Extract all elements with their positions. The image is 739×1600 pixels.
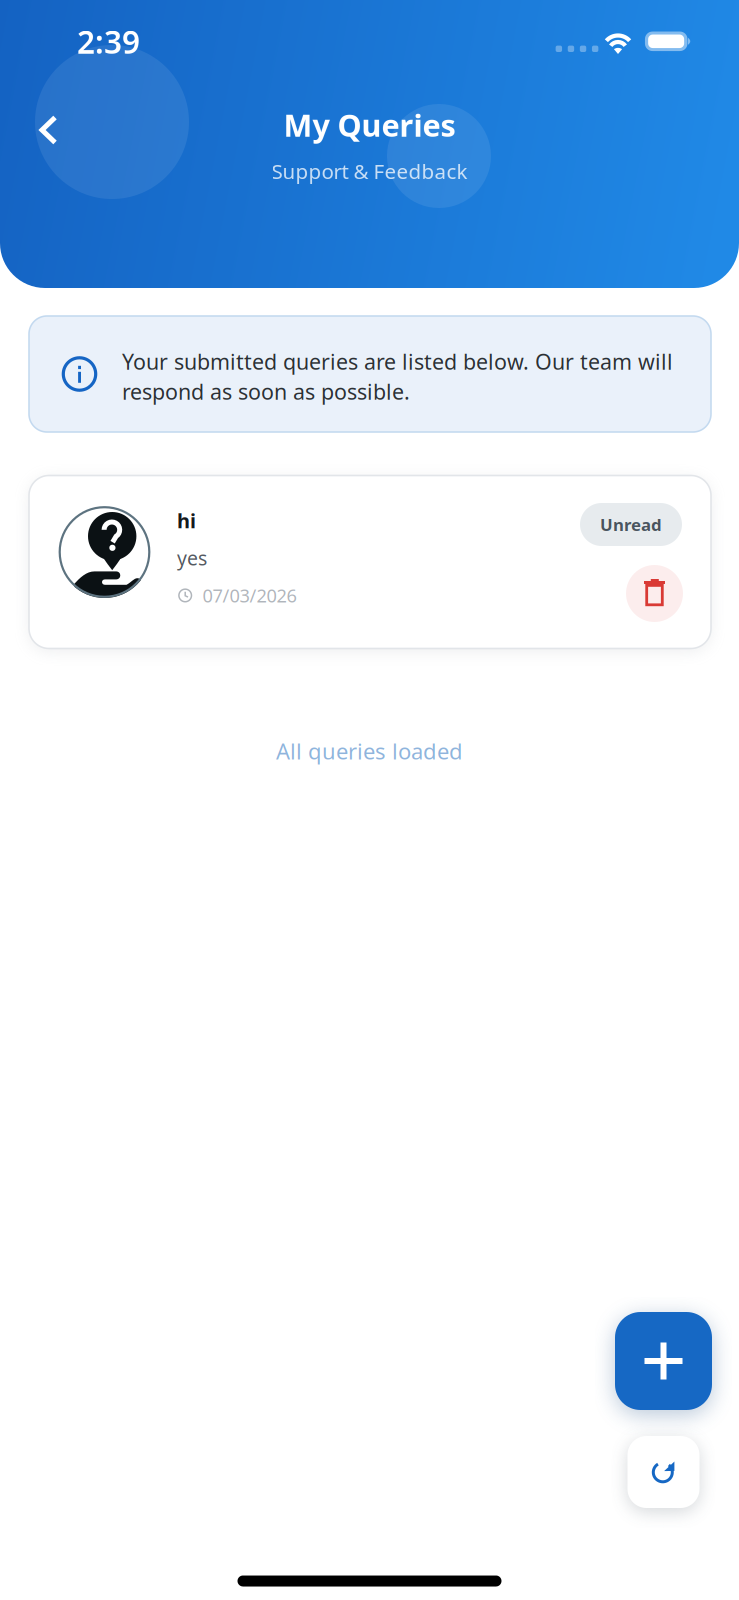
staticText: Unread: [600, 513, 662, 536]
staticText: 07/03/2026: [202, 583, 296, 608]
staticText: hi: [177, 507, 196, 534]
button[interactable]: Refresh: [627, 1436, 699, 1508]
button[interactable]: Delete query: [626, 565, 683, 622]
button[interactable]: hi: [29, 475, 711, 648]
staticText: Support & Feedback: [271, 157, 467, 185]
staticText: My Queries: [283, 105, 455, 145]
button[interactable]: New query: [615, 1312, 712, 1410]
staticText: yes: [177, 545, 207, 571]
button[interactable]: Back: [17, 99, 79, 161]
staticText: All queries loaded: [276, 736, 463, 766]
staticText: respond as soon as possible.: [122, 377, 410, 406]
staticText: Your submitted queries are listed below.…: [122, 347, 673, 376]
staticText: 2:39: [77, 21, 140, 62]
